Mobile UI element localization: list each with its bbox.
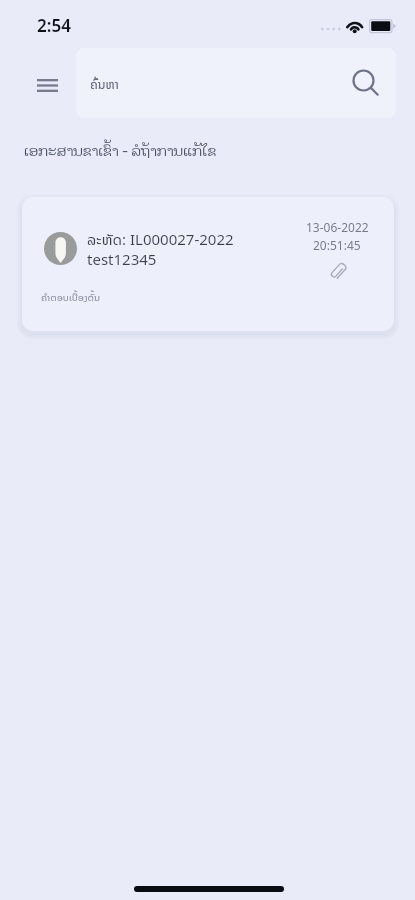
staticText: ລະຫັດ: IL000027-2022 — [87, 229, 234, 249]
button[interactable]: ຄົ້ນຫາ — [76, 48, 396, 118]
staticText: ຄົ້ນຫາ — [90, 75, 119, 92]
staticText: 13-06-2022 — [306, 219, 369, 235]
staticText: test12345 — [87, 249, 157, 269]
button[interactable]: Menu — [29, 69, 66, 101]
other: Search — [350, 67, 382, 99]
staticText: 20:51:45 — [313, 237, 361, 253]
staticText: ຄຳຕອບເບື້ອງຕົ້ນ — [41, 290, 101, 304]
staticText: ເອກະສານຂາເຂົ້າ - ລໍຖ້າການແກ້ໄຂ — [24, 139, 217, 161]
staticText: 2:54 — [37, 14, 71, 37]
button[interactable]: ລະຫັດ: IL000027-2022 — [22, 197, 394, 331]
other: Attachment — [328, 261, 347, 280]
